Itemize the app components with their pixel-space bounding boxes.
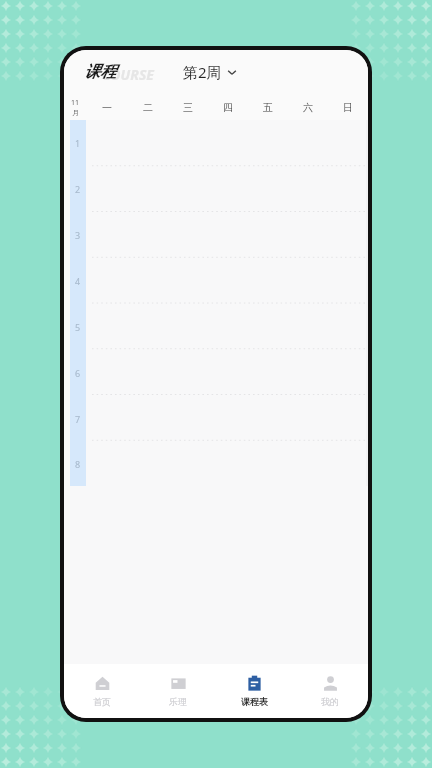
staticText: 6 — [75, 367, 81, 379]
staticText: 首页 — [93, 696, 111, 707]
staticText: 8 — [75, 458, 81, 470]
staticText: 四 — [223, 101, 233, 114]
staticText: 一 — [102, 101, 112, 114]
button[interactable]: 课程表 — [216, 664, 292, 718]
staticText: 五 — [263, 101, 273, 114]
button[interactable]: 首页 — [64, 664, 140, 718]
staticText: 第2周 — [183, 62, 222, 82]
staticText: 课程表 — [241, 696, 268, 707]
button[interactable]: 第2周 — [175, 58, 246, 86]
staticText: 7 — [75, 413, 81, 425]
staticText: 课程 — [84, 62, 116, 82]
staticText: COURSE — [102, 65, 154, 84]
staticText: 乐理 — [169, 696, 187, 707]
staticText: 4 — [75, 275, 81, 287]
staticText: 3 — [75, 229, 81, 241]
staticText: 月 — [72, 108, 79, 117]
staticText: 1 — [75, 137, 81, 149]
staticText: 我的 — [321, 696, 339, 707]
staticText: 2 — [75, 183, 81, 195]
staticText: 三 — [183, 101, 193, 114]
staticText: 11 — [71, 98, 80, 108]
staticText: 六 — [303, 101, 313, 114]
staticText: 5 — [75, 321, 81, 333]
button[interactable]: 我的 — [292, 664, 368, 718]
button[interactable]: 乐理 — [140, 664, 216, 718]
staticText: 二 — [143, 101, 153, 114]
staticText: 日 — [343, 101, 353, 114]
